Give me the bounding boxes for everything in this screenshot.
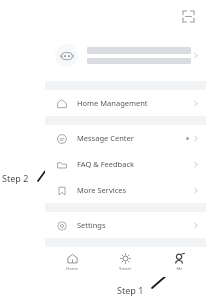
- button[interactable]: Scan: [179, 7, 197, 25]
- staticText: Step 2: [2, 172, 29, 184]
- button[interactable]: More Services: [45, 177, 206, 203]
- staticText: Home: [66, 266, 78, 272]
- button[interactable]: Home Management: [45, 90, 206, 116]
- button[interactable]: Settings: [45, 212, 206, 238]
- button[interactable]: Home: [45, 247, 98, 277]
- staticText: Message Center: [77, 133, 134, 143]
- button[interactable]: Message Center: [45, 125, 206, 151]
- staticText: Smart: [119, 266, 131, 272]
- button[interactable]: Smart: [98, 247, 152, 277]
- staticText: Step 1: [117, 284, 144, 296]
- button[interactable]: [45, 29, 206, 81]
- button[interactable]: FAQ & Feedback: [45, 151, 206, 177]
- staticText: More Services: [77, 185, 127, 195]
- staticText: Home Management: [77, 98, 148, 108]
- staticText: Me: [176, 266, 183, 272]
- button[interactable]: Me: [152, 247, 206, 277]
- staticText: Settings: [77, 220, 106, 230]
- staticText: FAQ & Feedback: [77, 159, 135, 169]
